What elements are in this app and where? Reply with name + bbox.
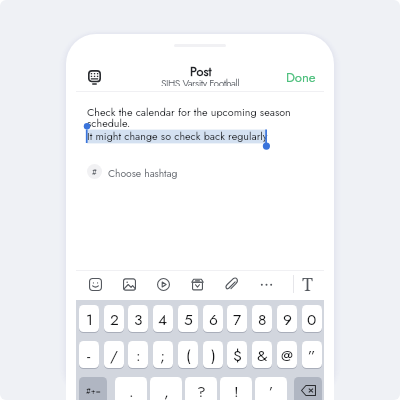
button[interactable]: 7 bbox=[227, 305, 247, 332]
button[interactable]: Photo bbox=[115, 270, 143, 298]
staticText: ! bbox=[234, 380, 239, 400]
staticText: Check the calendar for the upcoming seas… bbox=[87, 104, 291, 120]
button[interactable]: Backspace bbox=[294, 377, 322, 400]
button[interactable]: 4 bbox=[153, 305, 173, 332]
button[interactable]: ” bbox=[302, 341, 322, 368]
staticText: 5 bbox=[184, 308, 193, 330]
button[interactable]: ? bbox=[185, 377, 217, 400]
button[interactable]: # bbox=[87, 159, 178, 183]
staticText: ; bbox=[160, 344, 166, 366]
staticText: , bbox=[164, 380, 169, 400]
button[interactable]: $ bbox=[227, 341, 247, 368]
staticText: 7 bbox=[233, 308, 242, 330]
button[interactable]: 0 bbox=[302, 305, 322, 332]
button[interactable]: 5 bbox=[178, 305, 198, 332]
button[interactable]: Poll bbox=[183, 270, 211, 298]
staticText: : bbox=[136, 344, 141, 366]
staticText: # bbox=[92, 166, 97, 178]
button[interactable]: : bbox=[128, 341, 148, 368]
button[interactable]: Video bbox=[149, 270, 177, 298]
button[interactable]: - bbox=[79, 341, 99, 368]
button[interactable]: 8 bbox=[252, 305, 272, 332]
button[interactable]: 9 bbox=[277, 305, 297, 332]
button[interactable]: . bbox=[115, 377, 147, 400]
staticText: 4 bbox=[158, 308, 168, 330]
button[interactable]: / bbox=[104, 341, 124, 368]
staticText: ? bbox=[197, 380, 206, 400]
button[interactable]: Attach file bbox=[217, 270, 245, 298]
staticText: ” bbox=[308, 344, 316, 366]
button[interactable]: ; bbox=[153, 341, 173, 368]
staticText: Done bbox=[286, 68, 316, 87]
button[interactable]: 6 bbox=[203, 305, 223, 332]
staticText: #+= bbox=[86, 385, 101, 397]
staticText: ( bbox=[186, 344, 191, 366]
button[interactable]: Text formatting bbox=[294, 270, 322, 298]
staticText: @ bbox=[281, 344, 293, 366]
button[interactable]: Done bbox=[286, 68, 316, 87]
staticText: SJHS Varsity Football bbox=[161, 76, 240, 86]
button[interactable]: #+= bbox=[79, 377, 107, 400]
button[interactable]: @ bbox=[277, 341, 297, 368]
staticText: Post bbox=[190, 63, 212, 81]
staticText: 2 bbox=[110, 308, 119, 330]
button[interactable]: , bbox=[150, 377, 182, 400]
button[interactable]: 3 bbox=[128, 305, 148, 332]
staticText: schedule. bbox=[87, 115, 131, 131]
staticText: T bbox=[302, 272, 314, 297]
button[interactable]: 1 bbox=[79, 305, 99, 332]
staticText: . bbox=[129, 380, 134, 400]
button[interactable]: Hide keyboard bbox=[82, 65, 106, 89]
button[interactable]: & bbox=[252, 341, 272, 368]
staticText: 1 bbox=[86, 308, 93, 330]
button[interactable]: More options bbox=[252, 270, 280, 298]
button[interactable]: ! bbox=[220, 377, 252, 400]
staticText: 6 bbox=[209, 308, 218, 330]
staticText: 0 bbox=[307, 308, 317, 330]
button[interactable]: ’ bbox=[255, 377, 287, 400]
button[interactable]: Emoji bbox=[81, 270, 109, 298]
staticText: 3 bbox=[134, 308, 143, 330]
staticText: Choose hashtag bbox=[108, 166, 178, 181]
staticText: ’ bbox=[269, 380, 274, 400]
button[interactable]: ) bbox=[203, 341, 223, 368]
staticText: It might change so check back regularly bbox=[87, 128, 268, 144]
staticText: $ bbox=[233, 344, 242, 366]
button[interactable]: 2 bbox=[104, 305, 124, 332]
staticText: ) bbox=[211, 344, 216, 366]
staticText: - bbox=[87, 344, 91, 366]
staticText: & bbox=[257, 344, 268, 366]
button[interactable]: ( bbox=[178, 341, 198, 368]
staticText: 8 bbox=[258, 308, 267, 330]
staticText: 9 bbox=[283, 308, 292, 330]
staticText: / bbox=[110, 344, 118, 366]
